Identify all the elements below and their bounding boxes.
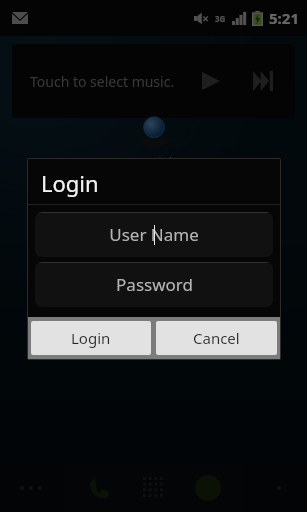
staticText: My Storage (124, 288, 183, 303)
staticText: My Email (28, 225, 75, 240)
staticText: Cancel (193, 328, 240, 348)
button[interactable]: My Link (132, 112, 176, 170)
staticText: Touch to select music. (30, 72, 175, 91)
staticText: User Name (109, 223, 199, 246)
button[interactable]: Next (241, 59, 285, 103)
staticText: My Doc (241, 225, 280, 240)
staticText: My Setting (130, 225, 186, 240)
staticText: Login (71, 328, 111, 348)
button[interactable]: Browser (190, 470, 226, 506)
button[interactable]: Cancel (156, 321, 277, 355)
staticText: Login (41, 168, 99, 198)
staticText: 5:21 (269, 8, 299, 28)
staticText: Password (116, 273, 193, 296)
staticText: 3G (215, 13, 226, 24)
button[interactable]: Phone (82, 470, 118, 506)
button[interactable]: Touch to select music. (12, 44, 295, 118)
button[interactable]: User Name (35, 212, 273, 257)
staticText: My Link (132, 154, 176, 170)
other: Email (12, 12, 28, 24)
button[interactable]: Apps (136, 470, 172, 506)
button[interactable]: Password (35, 262, 273, 307)
button[interactable]: Play (189, 59, 233, 103)
button[interactable]: Login (31, 321, 151, 355)
